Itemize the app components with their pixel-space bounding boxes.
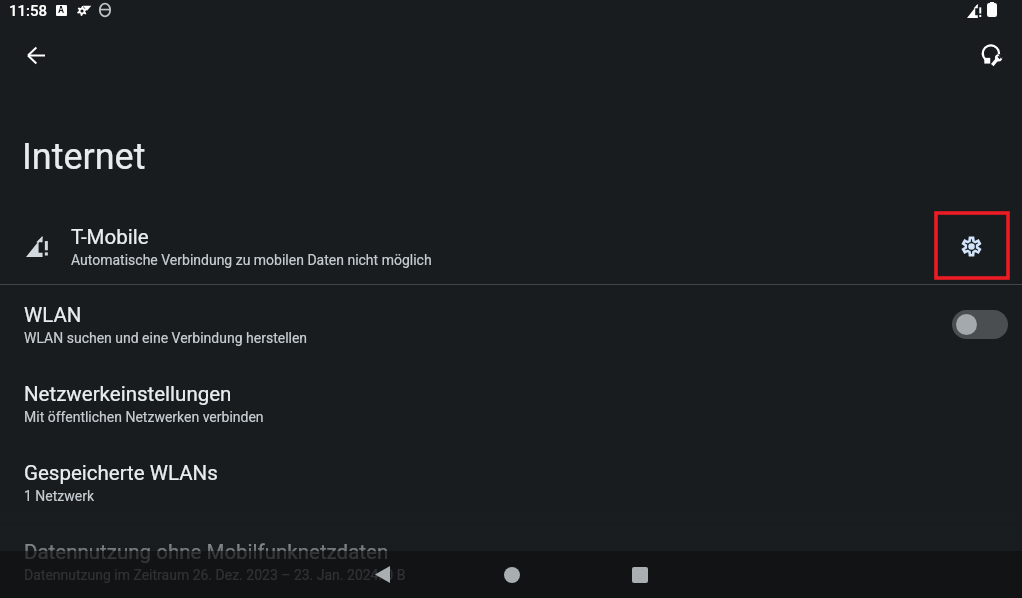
button[interactable]: Startbildschirm: [488, 551, 536, 598]
staticText: Gespeicherte WLANs: [24, 461, 218, 485]
staticText: Datennutzung ohne Mobilfunknetzdaten: [24, 540, 389, 564]
staticText: Internet: [22, 136, 146, 178]
staticText: Netzwerkeinstellungen: [24, 382, 232, 406]
button[interactable]: Zurück: [358, 551, 406, 598]
button[interactable]: Netzwerkeinstellungen zurücksetzen: [969, 32, 1015, 78]
staticText: Datennutzung im Zeitraum 26. Dez. 2023 –…: [24, 567, 406, 583]
staticText: Mit öffentlichen Netzwerken verbinden: [24, 409, 264, 425]
staticText: 11:58: [9, 2, 48, 20]
button[interactable]: WLAN ein- oder ausschalten: [938, 285, 1022, 364]
staticText: Automatische Verbindung zu mobilen Daten…: [71, 252, 432, 268]
button[interactable]: Zurück: [13, 32, 59, 78]
button[interactable]: Gespeicherte WLANs: [0, 443, 1022, 522]
staticText: WLAN suchen und eine Verbindung herstell…: [24, 330, 308, 346]
button[interactable]: Datennutzung ohne Mobilfunknetzdaten: [0, 522, 1022, 598]
button[interactable]: Einstellungen für T-Mobile: [921, 209, 1022, 284]
button[interactable]: WLAN: [0, 285, 1022, 364]
button[interactable]: Übersicht: [616, 551, 664, 598]
staticText: A: [58, 5, 65, 16]
staticText: WLAN: [24, 303, 82, 327]
staticText: T-Mobile: [71, 225, 149, 249]
button[interactable]: T-Mobile: [0, 209, 1022, 284]
button[interactable]: Netzwerkeinstellungen: [0, 364, 1022, 443]
staticText: 1 Netzwerk: [24, 488, 95, 504]
